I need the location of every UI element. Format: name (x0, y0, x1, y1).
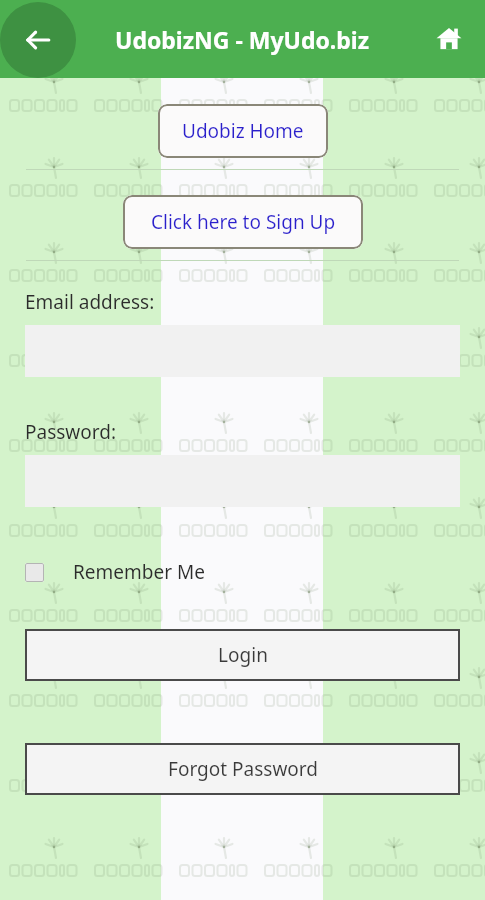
staticText: Password: (25, 419, 117, 445)
staticText: Udobiz Home (182, 118, 304, 144)
staticText: Email address: (25, 289, 155, 315)
button[interactable]: Home (427, 17, 471, 61)
button[interactable]: Login (25, 629, 460, 681)
button[interactable]: Back (0, 2, 76, 78)
staticText: Login (218, 642, 268, 668)
staticText: UdobizNG - MyUdo.biz (115, 24, 370, 55)
staticText: Click here to Sign Up (151, 209, 336, 235)
staticText: Remember Me (73, 559, 205, 585)
button[interactable]: Remember Me (25, 559, 205, 585)
button[interactable]: Click here to Sign Up (123, 195, 363, 249)
staticText: Forgot Password (168, 756, 318, 782)
button[interactable]: Forgot Password (25, 743, 460, 795)
button[interactable]: Udobiz Home (158, 104, 328, 158)
